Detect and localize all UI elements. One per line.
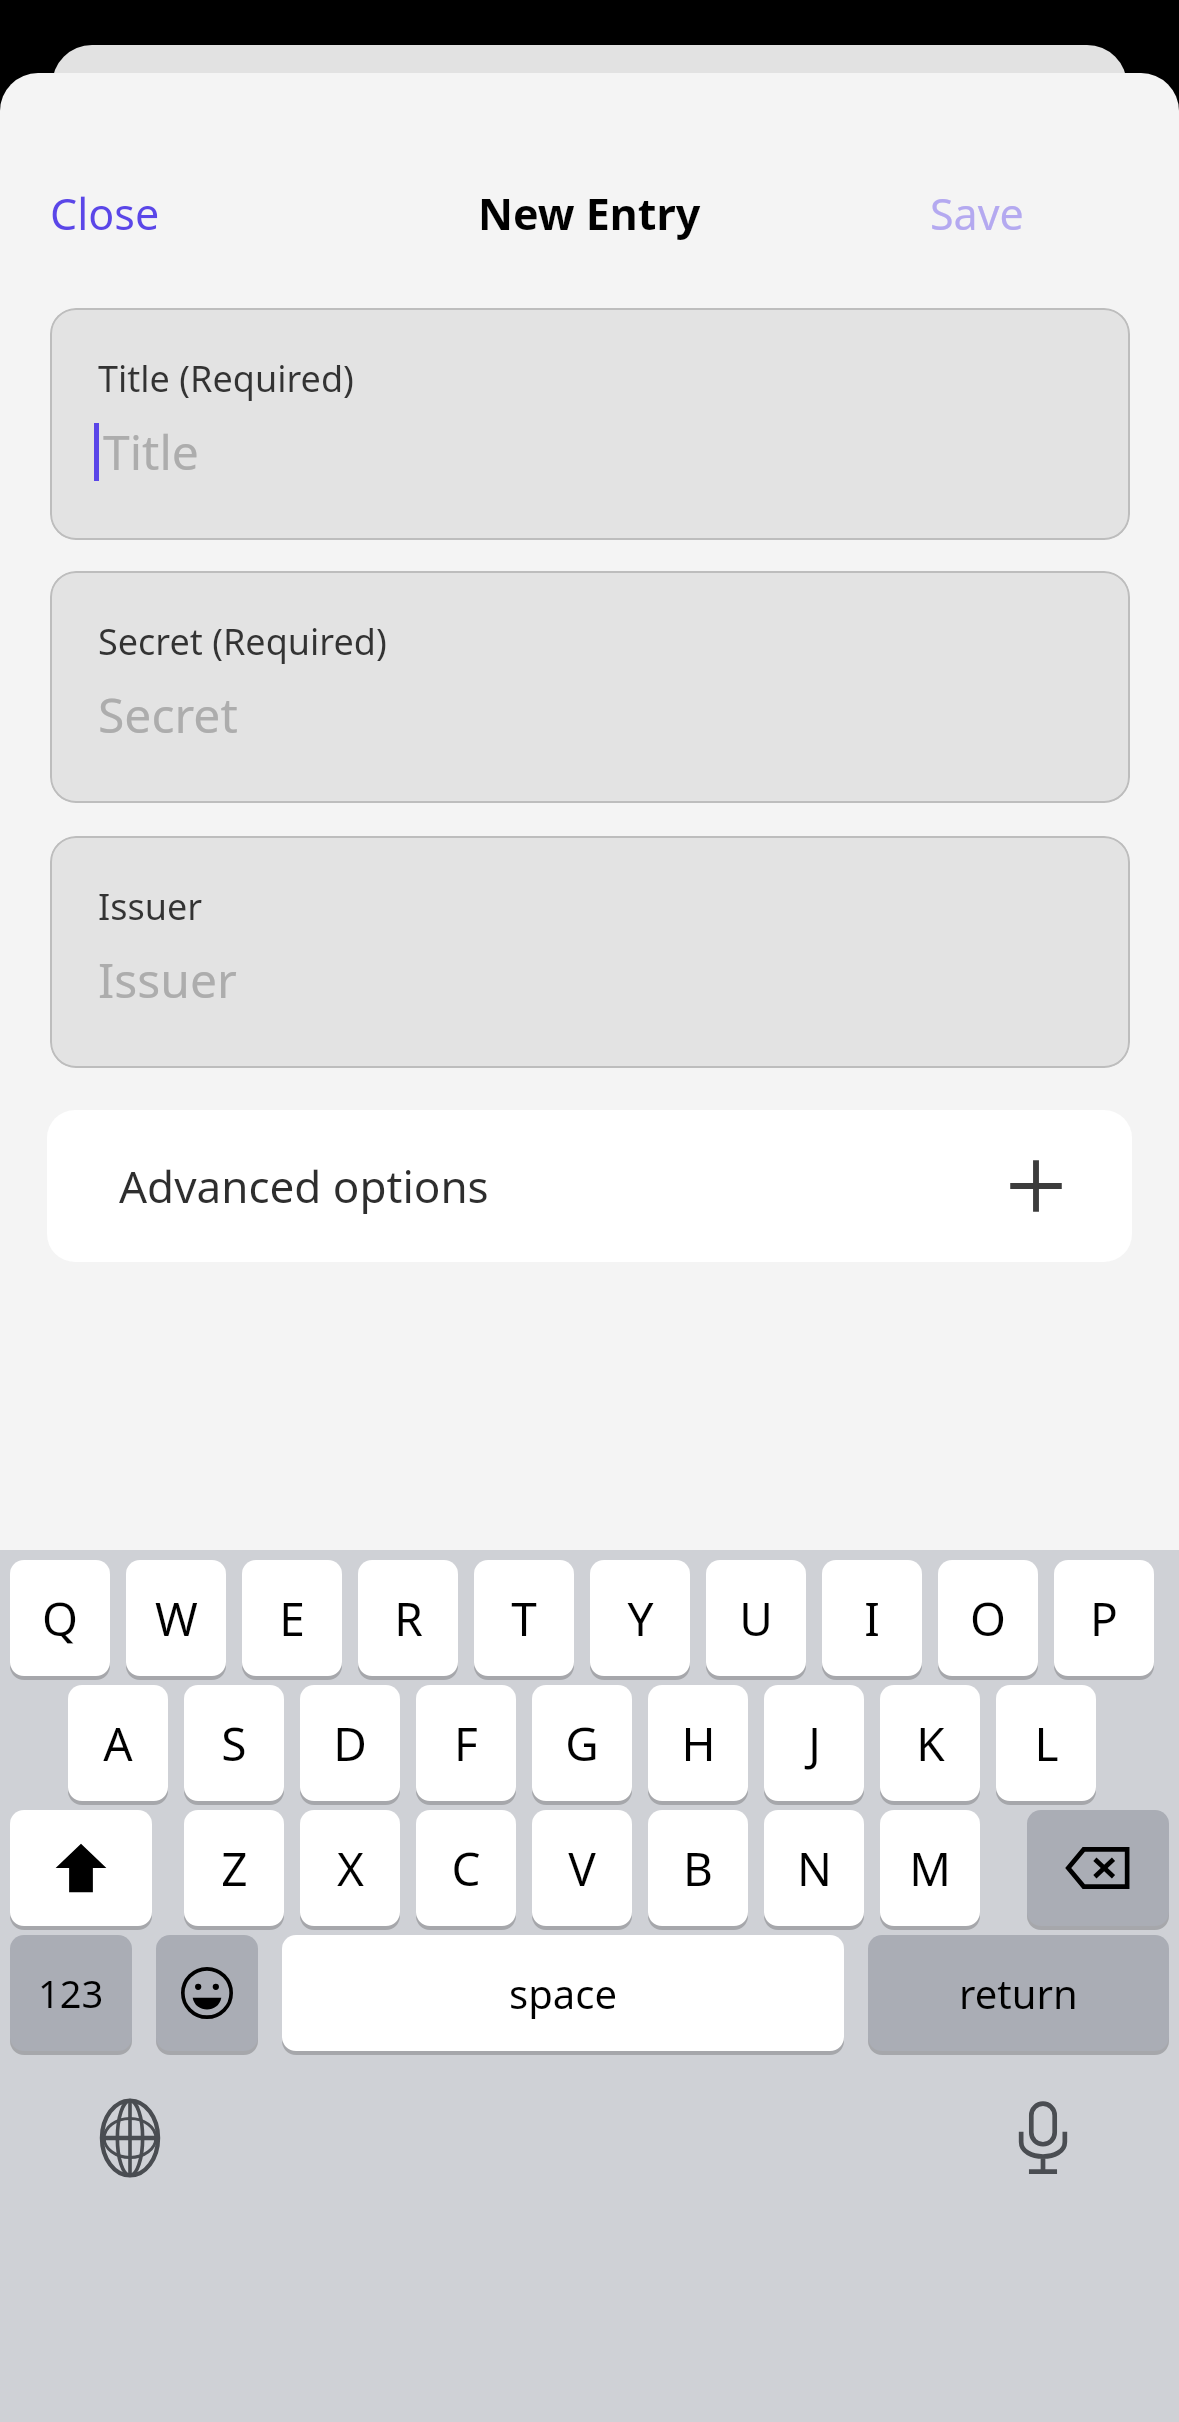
staticText: E [279, 1587, 305, 1650]
button[interactable]: Secret (Required) [50, 571, 1130, 803]
staticText: R [394, 1587, 423, 1650]
button[interactable]: G [532, 1685, 632, 1801]
button[interactable]: Title (Required) [50, 308, 1130, 540]
staticText: N [797, 1837, 832, 1900]
staticText: V [568, 1837, 596, 1900]
button[interactable]: D [300, 1685, 400, 1801]
staticText: space [509, 1966, 617, 2020]
button[interactable]: Z [184, 1810, 284, 1926]
button[interactable]: A [68, 1685, 168, 1801]
button[interactable]: Advanced options [47, 1110, 1132, 1262]
staticText: W [155, 1587, 198, 1650]
button[interactable]: Shift [10, 1810, 152, 1926]
staticText: H [681, 1712, 716, 1775]
button[interactable]: T [474, 1560, 574, 1676]
staticText: C [451, 1837, 481, 1900]
staticText: S [221, 1712, 247, 1775]
button[interactable]: H [648, 1685, 748, 1801]
button[interactable]: Dictation [995, 2090, 1091, 2186]
button[interactable]: V [532, 1810, 632, 1926]
button[interactable]: J [764, 1685, 864, 1801]
staticText: D [333, 1712, 367, 1775]
staticText: Title (Required) [98, 354, 354, 403]
staticText: Title [103, 419, 199, 484]
button[interactable]: S [184, 1685, 284, 1801]
staticText: T [511, 1587, 537, 1650]
button[interactable]: U [706, 1560, 806, 1676]
staticText: Save [930, 184, 1024, 243]
staticText: O [970, 1587, 1006, 1650]
button[interactable]: return [868, 1935, 1169, 2051]
button[interactable]: M [880, 1810, 980, 1926]
staticText: Secret [98, 682, 238, 747]
staticText: New Entry [478, 184, 701, 243]
staticText: A [103, 1712, 133, 1775]
staticText: I [864, 1587, 880, 1650]
button[interactable]: O [938, 1560, 1038, 1676]
button[interactable]: Issuer [50, 836, 1130, 1068]
staticText: Y [627, 1587, 654, 1650]
staticText: U [739, 1587, 773, 1650]
staticText: Issuer [98, 947, 237, 1012]
button[interactable]: L [996, 1685, 1096, 1801]
button[interactable]: N [764, 1810, 864, 1926]
button[interactable]: W [126, 1560, 226, 1676]
button[interactable]: B [648, 1810, 748, 1926]
button[interactable]: K [880, 1685, 980, 1801]
staticText: Advanced options [119, 1156, 489, 1216]
button[interactable]: C [416, 1810, 516, 1926]
staticText: Q [42, 1587, 78, 1650]
button[interactable]: R [358, 1560, 458, 1676]
staticText: 123 [38, 1967, 104, 2019]
button[interactable]: Emoji [156, 1935, 258, 2051]
button[interactable]: E [242, 1560, 342, 1676]
button[interactable]: space [282, 1935, 844, 2051]
button[interactable]: Y [590, 1560, 690, 1676]
staticText: F [454, 1712, 478, 1775]
staticText: Z [221, 1837, 248, 1900]
staticText: M [909, 1837, 951, 1900]
staticText: K [916, 1712, 945, 1775]
staticText: Issuer [98, 882, 203, 931]
staticText: B [683, 1837, 713, 1900]
button[interactable]: Backspace [1027, 1810, 1169, 1926]
button[interactable]: X [300, 1810, 400, 1926]
staticText: Secret (Required) [98, 617, 387, 666]
button[interactable]: Numbers [10, 1935, 132, 2051]
staticText: Close [50, 184, 160, 243]
button[interactable]: Close [50, 178, 260, 248]
staticText: J [808, 1712, 821, 1775]
staticText: return [959, 1966, 1078, 2020]
staticText: P [1090, 1587, 1118, 1650]
button[interactable]: Q [10, 1560, 110, 1676]
staticText: L [1034, 1712, 1059, 1775]
button[interactable]: I [822, 1560, 922, 1676]
staticText: G [565, 1712, 599, 1775]
staticText: X [337, 1837, 364, 1900]
button[interactable]: F [416, 1685, 516, 1801]
button[interactable]: Switch keyboard language [82, 2090, 178, 2186]
button[interactable]: P [1054, 1560, 1154, 1676]
button[interactable]: Save [930, 178, 1130, 248]
